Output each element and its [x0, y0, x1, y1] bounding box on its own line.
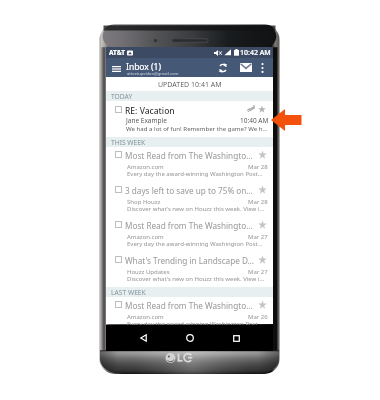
staticText: What's Trending in Landscape D… — [125, 255, 255, 266]
staticText: Amazon.com — [127, 233, 164, 241]
staticText: Discover what's new on Houzz this week. … — [127, 205, 265, 213]
staticText: TODAY — [111, 92, 133, 101]
button[interactable]: Recent apps — [226, 327, 246, 349]
staticText: Mar 26 — [248, 313, 268, 321]
staticText: Every day the award-winning Washington P… — [127, 240, 263, 248]
staticText: UPDATED 10:41 AM — [158, 80, 222, 90]
staticText: Amazon.com — [127, 313, 164, 321]
staticText: Most Read from The Washingto… — [125, 220, 253, 231]
staticText: Most Read from The Washingto… — [125, 300, 253, 311]
button[interactable]: Home — [180, 327, 200, 349]
button[interactable]: What's Trending in Landscape D… — [106, 252, 273, 287]
staticText: 10:40 AM — [240, 116, 269, 125]
button[interactable]: Compose mail — [237, 58, 255, 77]
staticText: 10:42 AM — [240, 48, 271, 58]
staticText: Every day the award-winning Washington P… — [127, 320, 263, 328]
staticText: Most Read from The Washingto… — [125, 150, 253, 161]
button[interactable]: Most Read from The Washingto… — [106, 217, 273, 252]
staticText: Mar 27 — [248, 233, 268, 241]
staticText: Jane Example — [126, 116, 167, 125]
staticText: RE: Vacation — [125, 105, 175, 117]
staticText: Shop Houzz — [127, 198, 161, 206]
staticText: Every day the award-winning Washington P… — [127, 170, 263, 178]
button[interactable]: 3 days left to save up to 75% on… — [106, 182, 273, 217]
button[interactable]: Open navigation drawer — [109, 59, 123, 78]
staticText: AT&T — [109, 48, 125, 57]
button[interactable]: More options — [257, 58, 268, 77]
staticText: Houzz Updates — [127, 268, 170, 276]
button[interactable]: Most Read from The Washingto… — [106, 147, 273, 182]
staticText: Mar 28 — [248, 163, 268, 171]
staticText: attsetupvideo@gmail.com — [127, 71, 179, 77]
staticText: THIS WEEK — [111, 138, 146, 147]
staticText: Mar 27 — [248, 268, 268, 276]
staticText: Inbox (1) — [126, 61, 162, 73]
staticText: Amazon.com — [127, 163, 164, 171]
button[interactable]: Most Read from The Washingto… — [106, 297, 273, 324]
button[interactable]: RE: Vacation — [106, 101, 273, 137]
staticText: We had a lot of fun! Remember the game? … — [126, 124, 268, 132]
staticText: Mar 28 — [248, 198, 268, 206]
staticText: LAST WEEK — [111, 288, 146, 297]
staticText: Discover what's new on Houzz this week. … — [127, 275, 265, 283]
staticText: 3 days left to save up to 75% on… — [125, 185, 253, 196]
button[interactable]: Refresh — [214, 58, 232, 77]
button[interactable]: Back — [133, 327, 153, 349]
